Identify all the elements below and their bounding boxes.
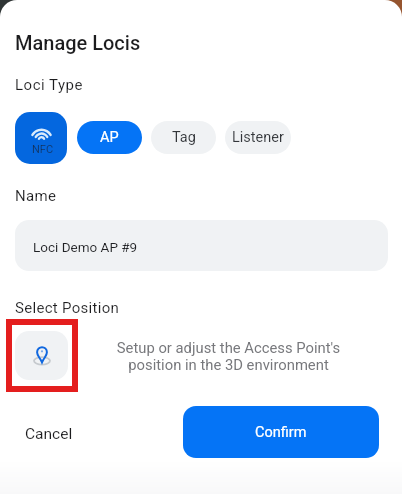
staticText: NFC	[32, 143, 54, 156]
staticText: Loci Demo AP #9	[33, 239, 138, 255]
staticText: Loci Type	[15, 76, 83, 94]
staticText: AP	[100, 129, 119, 146]
button[interactable]: Confirm	[183, 406, 379, 458]
button[interactable]: Listener	[225, 121, 291, 154]
staticText: Tag	[172, 129, 196, 146]
button[interactable]: Tag	[151, 121, 216, 154]
button[interactable]: Select position in 3D environment	[15, 331, 68, 380]
staticText: Manage Locis	[15, 31, 141, 54]
staticText: Name	[15, 187, 57, 205]
staticText: Listener	[232, 129, 284, 146]
staticText: Cancel	[25, 425, 73, 443]
button[interactable]: NFC loci type	[15, 112, 67, 164]
button[interactable]: Cancel	[11, 411, 87, 457]
button[interactable]: AP	[77, 121, 142, 154]
button[interactable]: Loci Demo AP #9	[15, 220, 388, 271]
staticText: Setup or adjust the Access Point's posit…	[88, 339, 369, 374]
staticText: Select Position	[15, 299, 120, 317]
staticText: Confirm	[255, 424, 307, 441]
